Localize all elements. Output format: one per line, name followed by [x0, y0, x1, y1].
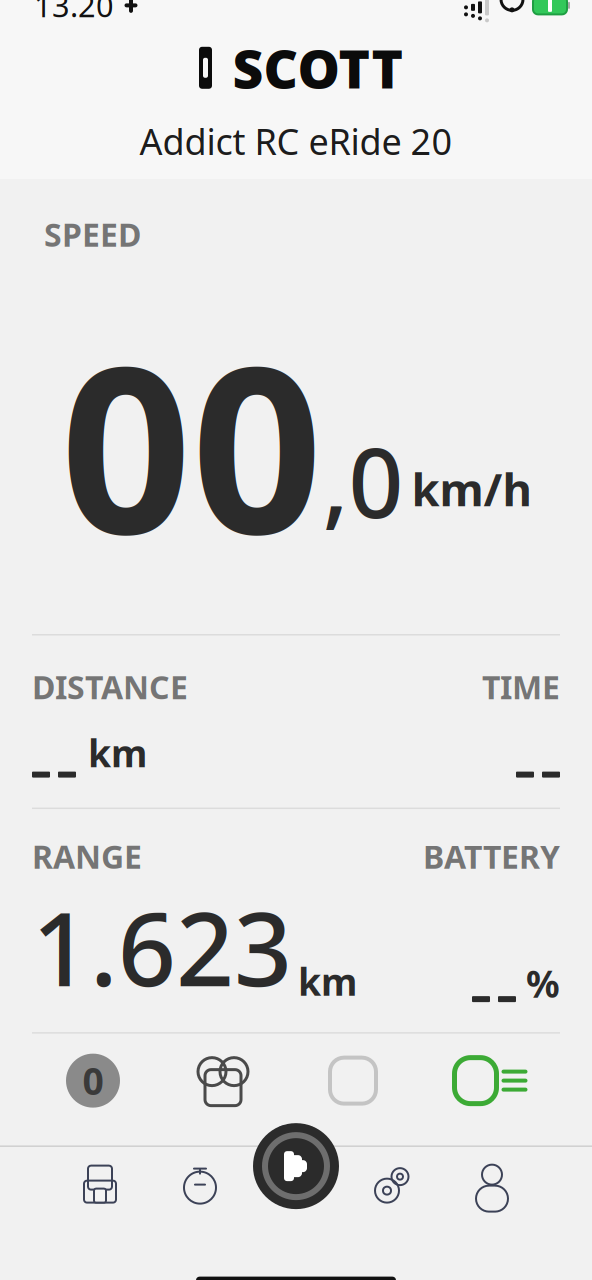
button[interactable]: Headlight [446, 1044, 536, 1118]
button[interactable]: Start ride [253, 1123, 339, 1209]
staticText: 13.20 [34, 0, 114, 26]
staticText: BATTERY [423, 835, 560, 878]
staticText: 0 [82, 1056, 103, 1105]
staticText: ,0 [322, 417, 403, 544]
staticText: SCOTT [232, 32, 403, 103]
button[interactable]: Heart rate [186, 1044, 260, 1118]
button[interactable]: Profile [442, 1147, 542, 1223]
button[interactable]: Home [50, 1147, 150, 1223]
staticText: Addict RC eRide 20 [139, 117, 452, 165]
staticText: TIME [482, 665, 560, 708]
button[interactable]: Warnings [316, 1044, 390, 1118]
button[interactable]: Settings [342, 1147, 442, 1223]
staticText: DISTANCE [32, 665, 188, 708]
staticText: 1.623 [32, 880, 292, 1014]
staticText: % [526, 959, 560, 1008]
button[interactable]: Activities [150, 1147, 250, 1223]
button[interactable]: Support level 0 [56, 1044, 130, 1118]
staticText: km [298, 957, 357, 1006]
staticText: SPEED [44, 213, 141, 255]
staticText: km [88, 728, 147, 778]
staticText: RANGE [32, 835, 142, 878]
staticText: 00 [60, 292, 322, 597]
staticText: km/h [411, 459, 531, 519]
